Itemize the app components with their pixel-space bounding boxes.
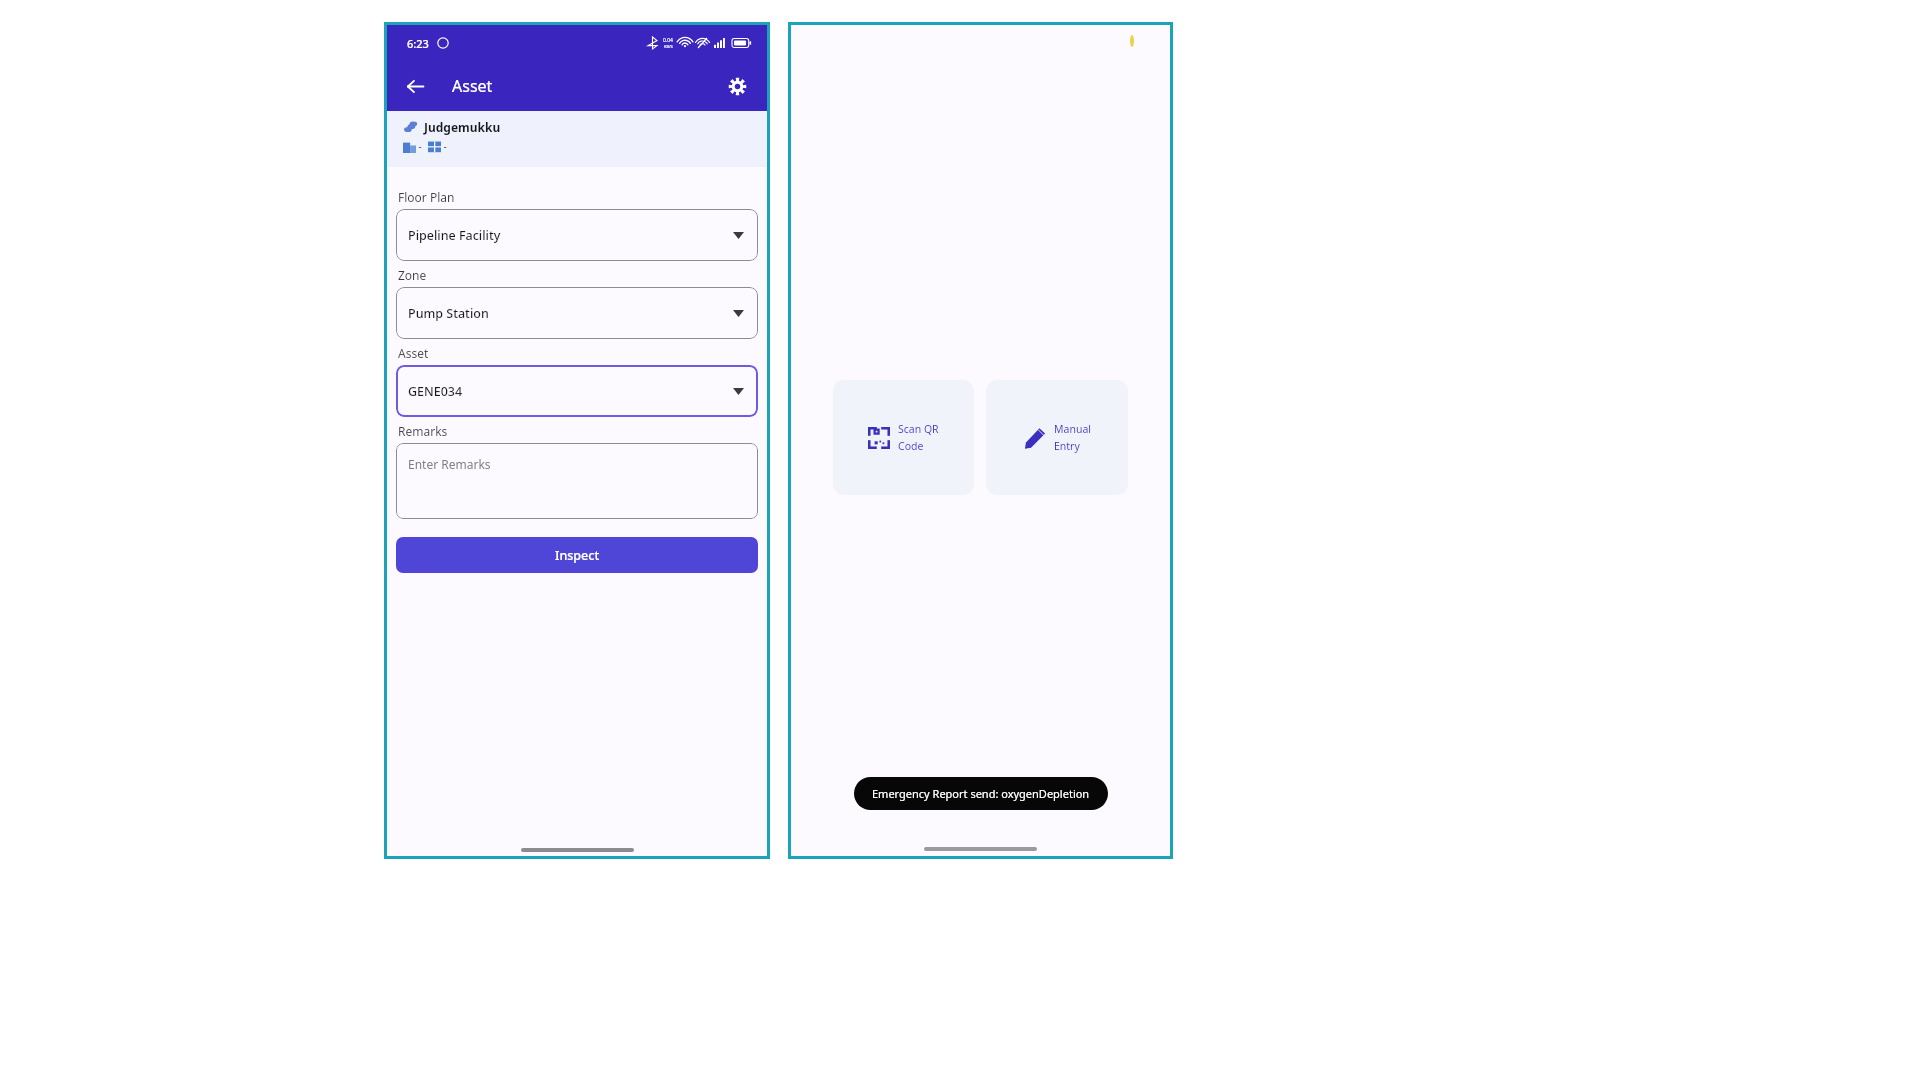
button[interactable]: Enter Remarks xyxy=(396,443,758,519)
staticText: Asset xyxy=(452,75,493,97)
button[interactable]: Pump Station xyxy=(396,287,758,339)
staticText: Pipeline Facility xyxy=(408,227,501,244)
staticText: 6:23 xyxy=(407,36,429,51)
staticText: - xyxy=(416,139,428,153)
button[interactable]: Settings xyxy=(719,68,755,104)
staticText: Code xyxy=(898,439,924,453)
staticText: Emergency Report send: oxygenDepletion xyxy=(872,786,1090,801)
staticText: Enter Remarks xyxy=(408,456,491,472)
staticText: Judgemukku xyxy=(424,119,501,135)
staticText: Inspect xyxy=(555,547,600,564)
staticText: Remarks xyxy=(398,423,448,439)
staticText: KB/S xyxy=(664,44,673,49)
staticText: GENE034 xyxy=(408,383,463,400)
staticText: Floor Plan xyxy=(398,189,455,205)
button[interactable]: Pipeline Facility xyxy=(396,209,758,261)
staticText: Pump Station xyxy=(408,305,489,322)
button[interactable]: Manual xyxy=(986,380,1128,495)
staticText: Asset xyxy=(398,345,429,361)
button[interactable]: Scan QR xyxy=(833,380,974,495)
button[interactable]: GENE034 xyxy=(396,365,758,417)
staticText: Scan QR xyxy=(898,422,939,436)
staticText: 0.04 xyxy=(663,37,673,44)
staticText: - xyxy=(441,139,447,153)
button[interactable]: Inspect xyxy=(396,537,758,573)
staticText: Entry xyxy=(1054,439,1080,453)
staticText: Manual xyxy=(1054,422,1091,436)
button[interactable]: Back xyxy=(397,68,433,104)
staticText: Zone xyxy=(398,267,427,283)
